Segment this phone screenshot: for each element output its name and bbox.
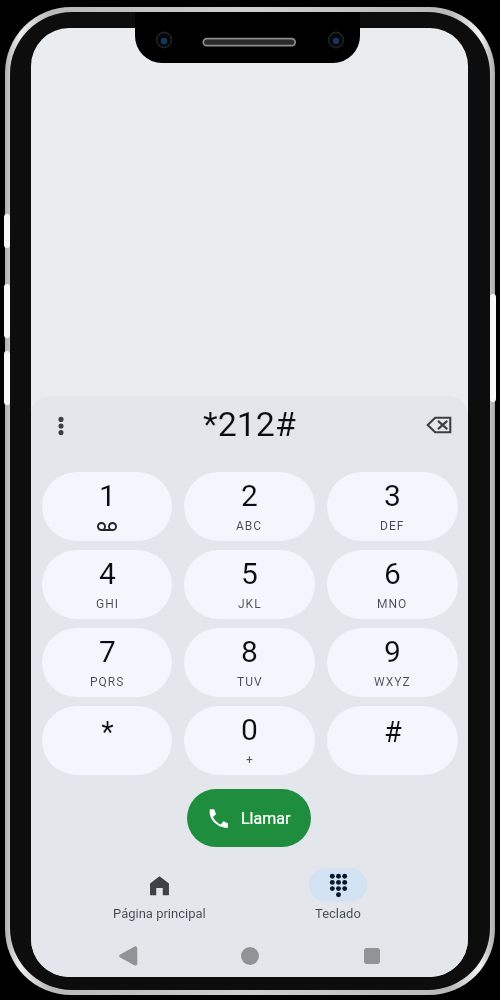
button[interactable]: More options	[41, 406, 81, 446]
button[interactable]: Llamar	[187, 789, 311, 847]
button[interactable]: Página principal	[89, 868, 229, 921]
staticText: 3	[384, 478, 401, 513]
button[interactable]: 6	[327, 550, 458, 619]
button[interactable]: 2	[184, 472, 315, 541]
staticText: WXYZ	[374, 675, 411, 689]
button[interactable]: 4	[42, 550, 172, 619]
staticText: JKL	[238, 597, 262, 611]
staticText: DEF	[380, 519, 405, 533]
button[interactable]: #	[327, 706, 458, 775]
staticText: *212#	[203, 404, 296, 444]
staticText: MNO	[377, 597, 408, 611]
staticText: +	[246, 753, 254, 767]
button[interactable]: 0	[184, 706, 315, 775]
staticText: 4	[99, 556, 116, 591]
button[interactable]: 8	[184, 628, 315, 697]
staticText: Teclado	[315, 906, 361, 921]
button[interactable]: 3	[327, 472, 458, 541]
staticText: Página principal	[113, 906, 206, 921]
staticText: #	[384, 715, 402, 749]
staticText: Llamar	[241, 809, 291, 828]
staticText: 2	[241, 478, 258, 513]
staticText: 0	[241, 712, 258, 747]
button[interactable]: Backspace	[417, 403, 461, 447]
button[interactable]: *	[42, 706, 172, 775]
staticText: 8	[241, 634, 258, 669]
staticText: 6	[384, 556, 401, 591]
staticText: ABC	[236, 519, 263, 533]
button[interactable]: Teclado	[268, 868, 408, 921]
staticText: 1	[99, 478, 116, 513]
staticText: PQRS	[90, 675, 125, 689]
button[interactable]: 5	[184, 550, 315, 619]
staticText: GHI	[96, 597, 119, 611]
staticText: TUV	[237, 675, 263, 689]
staticText: 9	[384, 634, 401, 669]
staticText: *	[101, 715, 114, 749]
button[interactable]: 7	[42, 628, 172, 697]
button[interactable]: 9	[327, 628, 458, 697]
button[interactable]: 1	[42, 472, 172, 541]
staticText: 7	[99, 634, 116, 669]
staticText: 5	[241, 556, 258, 591]
